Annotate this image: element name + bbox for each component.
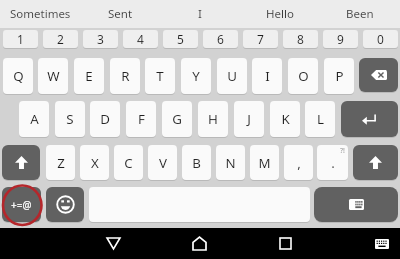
- staticText: 2: [57, 31, 64, 47]
- button[interactable]: [359, 58, 398, 92]
- staticText: H: [208, 110, 218, 128]
- button[interactable]: Q: [3, 58, 33, 94]
- button[interactable]: G: [162, 101, 192, 137]
- button[interactable]: W: [38, 58, 68, 94]
- button[interactable]: L: [305, 101, 335, 137]
- button[interactable]: 9: [323, 30, 358, 48]
- button[interactable]: 0: [363, 30, 398, 48]
- staticText: G: [172, 110, 182, 128]
- staticText: 9: [337, 31, 344, 47]
- staticText: 0: [377, 31, 384, 47]
- button[interactable]: .: [317, 145, 348, 180]
- staticText: ,: [297, 154, 301, 172]
- button[interactable]: Z: [46, 145, 75, 180]
- staticText: O: [298, 67, 309, 85]
- staticText: X: [91, 154, 99, 172]
- staticText: 7: [257, 31, 264, 47]
- button[interactable]: N: [216, 145, 245, 180]
- button[interactable]: Sometimes: [0, 0, 80, 28]
- staticText: D: [100, 110, 110, 128]
- staticText: N: [225, 154, 236, 172]
- staticText: 4: [137, 31, 144, 47]
- button[interactable]: ,: [284, 145, 313, 180]
- staticText: F: [138, 110, 145, 128]
- button[interactable]: P: [324, 58, 354, 94]
- button[interactable]: 1: [3, 30, 38, 48]
- button[interactable]: Y: [181, 58, 211, 94]
- staticText: L: [317, 110, 324, 128]
- staticText: Y: [192, 67, 200, 85]
- button[interactable]: H: [198, 101, 228, 137]
- staticText: S: [66, 110, 74, 128]
- staticText: K: [281, 110, 290, 128]
- staticText: Sometimes: [10, 6, 71, 22]
- staticText: J: [247, 110, 251, 128]
- staticText: Z: [57, 154, 65, 172]
- button[interactable]: [314, 187, 398, 222]
- button[interactable]: 3: [83, 30, 118, 48]
- button[interactable]: [2, 145, 40, 180]
- staticText: T: [156, 67, 164, 85]
- button[interactable]: 2: [43, 30, 78, 48]
- staticText: 3: [97, 31, 104, 47]
- button[interactable]: U: [217, 58, 247, 94]
- staticText: B: [192, 154, 201, 172]
- button[interactable]: +=@: [2, 187, 41, 222]
- button[interactable]: C: [114, 145, 143, 180]
- staticText: W: [47, 67, 60, 85]
- staticText: V: [159, 154, 167, 172]
- staticText: +=@: [11, 198, 32, 212]
- button[interactable]: F: [126, 101, 156, 137]
- button[interactable]: J: [234, 101, 264, 137]
- button[interactable]: E: [74, 58, 104, 94]
- button[interactable]: V: [148, 145, 177, 180]
- button[interactable]: [46, 187, 84, 222]
- staticText: 6: [217, 31, 224, 47]
- button[interactable]: 4: [123, 30, 158, 48]
- staticText: Hello: [266, 6, 294, 22]
- staticText: E: [85, 67, 93, 85]
- staticText: R: [121, 67, 130, 85]
- staticText: U: [227, 67, 237, 85]
- button[interactable]: D: [90, 101, 120, 137]
- staticText: I: [198, 6, 202, 22]
- staticText: 8: [297, 31, 304, 47]
- button[interactable]: 8: [283, 30, 318, 48]
- button[interactable]: 7: [243, 30, 278, 48]
- button[interactable]: S: [55, 101, 85, 137]
- button[interactable]: I: [160, 0, 240, 28]
- staticText: M: [258, 154, 271, 172]
- staticText: A: [30, 110, 39, 128]
- button[interactable]: [183, 228, 216, 259]
- button[interactable]: M: [250, 145, 279, 180]
- button[interactable]: 5: [163, 30, 198, 48]
- button[interactable]: O: [288, 58, 318, 94]
- staticText: I: [265, 67, 270, 85]
- staticText: Sent: [108, 6, 133, 22]
- button[interactable]: [269, 228, 302, 259]
- button[interactable]: A: [19, 101, 49, 137]
- button[interactable]: T: [145, 58, 175, 94]
- staticText: 1: [17, 31, 24, 47]
- button[interactable]: X: [80, 145, 109, 180]
- button[interactable]: [341, 101, 398, 137]
- staticText: 5: [177, 31, 184, 47]
- button[interactable]: [367, 228, 397, 259]
- button[interactable]: Hello: [240, 0, 320, 28]
- staticText: Q: [13, 67, 24, 85]
- button[interactable]: B: [182, 145, 211, 180]
- button[interactable]: R: [110, 58, 140, 94]
- button[interactable]: I: [252, 58, 282, 94]
- staticText: ?!: [340, 146, 345, 156]
- staticText: P: [335, 67, 344, 85]
- button[interactable]: Been: [320, 0, 400, 28]
- staticText: C: [124, 154, 133, 172]
- button[interactable]: [353, 145, 398, 180]
- button[interactable]: K: [270, 101, 300, 137]
- button[interactable]: Sent: [80, 0, 160, 28]
- button[interactable]: 6: [203, 30, 238, 48]
- staticText: .: [331, 154, 335, 172]
- button[interactable]: [97, 228, 130, 259]
- staticText: Been: [346, 6, 374, 22]
